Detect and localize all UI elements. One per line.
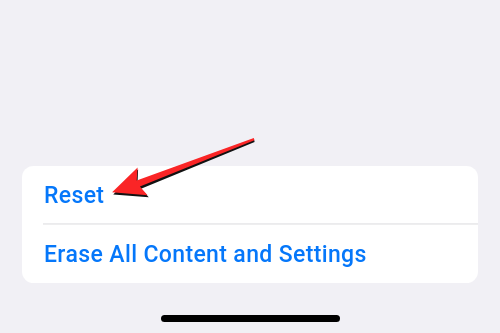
button[interactable]: Reset — [22, 166, 478, 225]
staticText: Erase All Content and Settings — [44, 241, 367, 268]
button[interactable]: Erase All Content and Settings — [22, 225, 478, 283]
staticText: Reset — [44, 182, 105, 209]
